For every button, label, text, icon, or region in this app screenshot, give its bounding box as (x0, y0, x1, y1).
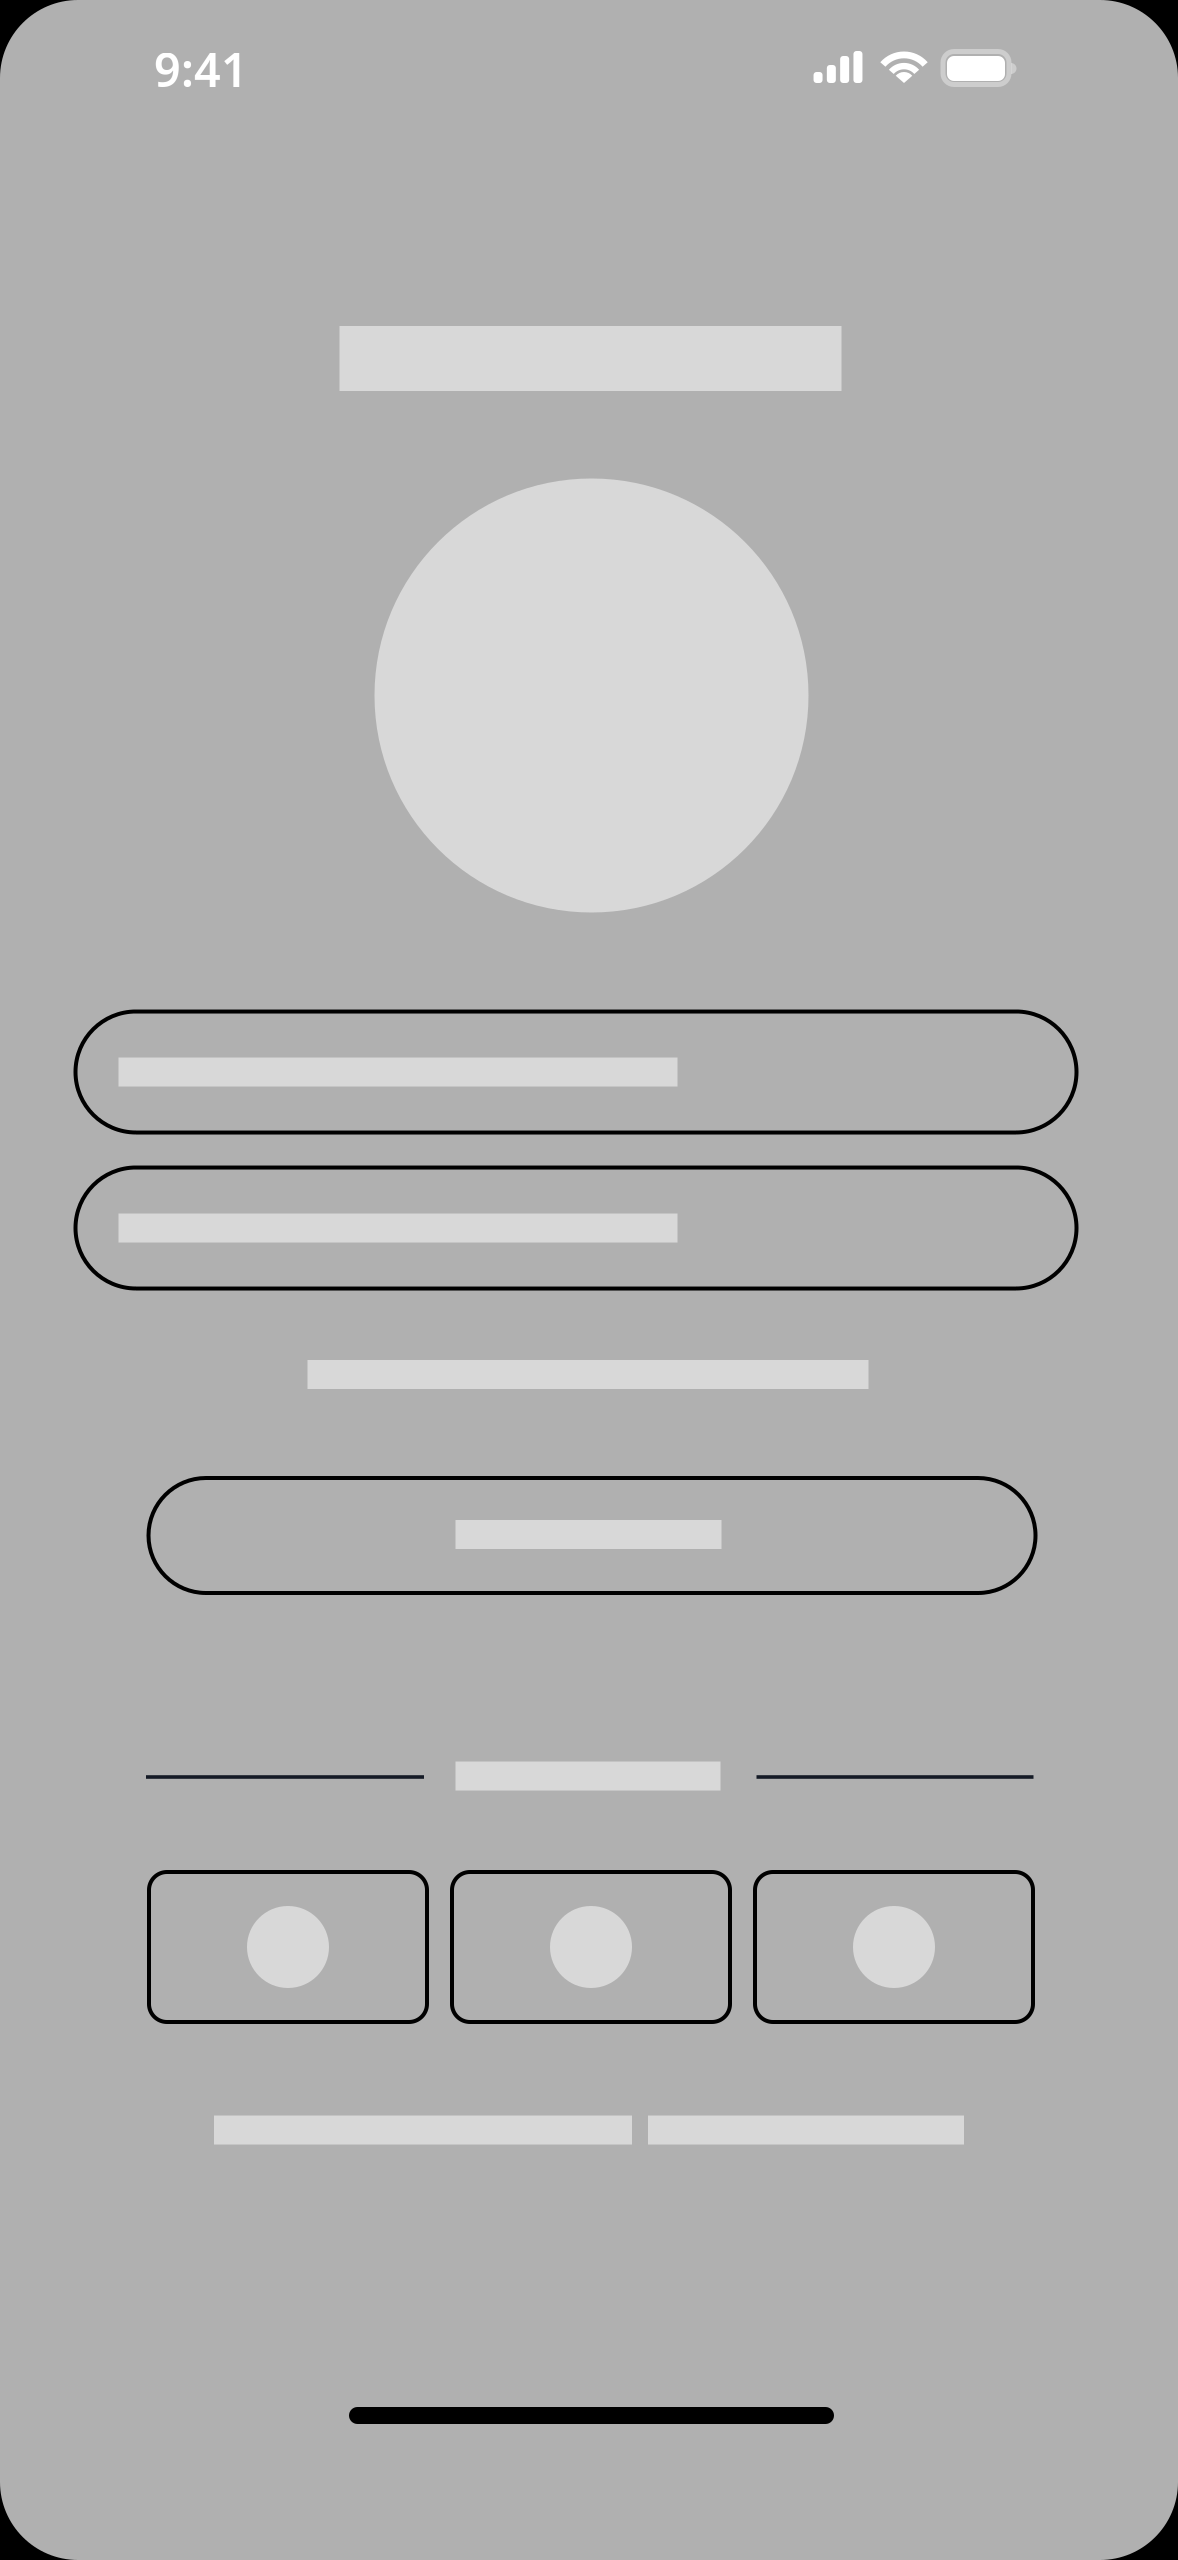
button[interactable]: Continue with Facebook (755, 1872, 1033, 2022)
button[interactable]: Password (75, 1167, 1076, 1288)
button[interactable]: Email address (75, 1011, 1076, 1132)
button[interactable]: Continue with Apple (149, 1872, 427, 2022)
staticText: 9:41 (154, 38, 248, 100)
button[interactable]: Continue with Google (452, 1872, 730, 2022)
button[interactable]: Sign in (148, 1478, 1035, 1593)
